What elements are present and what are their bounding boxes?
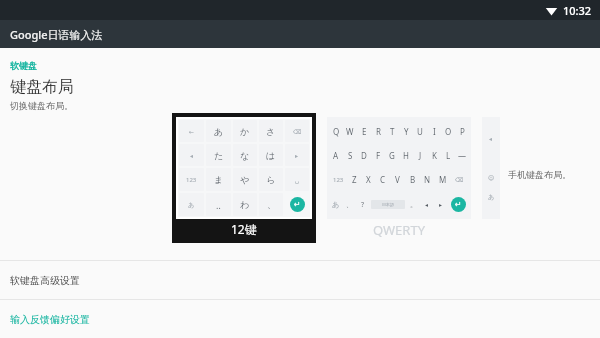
staticText: た <box>214 150 224 161</box>
staticText: さ <box>266 126 276 137</box>
staticText: は <box>266 150 276 161</box>
staticText: な <box>240 150 250 161</box>
staticText: Y <box>404 126 409 137</box>
staticText: G <box>389 150 395 161</box>
staticText: 日本語 <box>382 202 394 207</box>
staticText: 、 <box>267 199 276 210</box>
staticText: 手机键盘布局。 <box>508 169 571 180</box>
staticText: D <box>361 150 367 161</box>
staticText: ⌫ <box>293 128 302 135</box>
staticText: T <box>390 126 395 137</box>
staticText: ◂ <box>190 152 194 159</box>
staticText: あ <box>214 126 224 137</box>
staticText: 。 <box>410 200 417 209</box>
button[interactable]: ◂ <box>482 117 500 219</box>
staticText: ← <box>189 128 195 135</box>
button[interactable]: ← <box>172 113 316 243</box>
staticText: 、 <box>346 200 353 209</box>
staticText: P <box>460 126 465 137</box>
staticText: 输入反馈偏好设置 <box>10 313 90 326</box>
staticText: ま <box>214 174 224 185</box>
staticText: R <box>376 126 381 137</box>
staticText: や <box>240 174 250 185</box>
button[interactable]: 输入反馈偏好设置 <box>0 300 600 338</box>
staticText: ▸ <box>439 201 443 208</box>
staticText: U <box>417 126 423 137</box>
staticText: ↵ <box>455 200 462 209</box>
staticText: 123 <box>186 176 197 184</box>
staticText: ◂ <box>425 201 429 208</box>
staticText: ▸ <box>295 152 299 159</box>
staticText: E <box>362 126 367 137</box>
staticText: H <box>403 150 409 161</box>
staticText: ? <box>361 200 365 210</box>
staticText: あ <box>188 201 195 209</box>
staticText: 12键 <box>231 221 257 237</box>
staticText: か <box>240 126 250 137</box>
staticText: わ <box>240 199 250 210</box>
staticText: J <box>419 150 422 161</box>
staticText: ⌫ <box>455 176 464 183</box>
staticText: O <box>445 126 452 137</box>
button[interactable]: 软键盘高级设置 <box>0 261 600 299</box>
staticText: A <box>333 150 339 161</box>
staticText: 10:32 <box>563 3 592 18</box>
staticText: 键盘布局 <box>10 77 74 97</box>
staticText: ら <box>266 174 276 185</box>
staticText: N <box>424 174 431 185</box>
staticText: Z <box>352 174 357 185</box>
staticText: — <box>458 150 466 161</box>
staticText: ‥ <box>216 199 221 211</box>
staticText: ☺ <box>488 174 495 181</box>
staticText: B <box>410 174 416 185</box>
staticText: I <box>433 126 436 137</box>
staticText: C <box>380 174 386 185</box>
staticText: ␣ <box>295 176 299 183</box>
staticText: W <box>346 126 354 137</box>
staticText: 软键盘高级设置 <box>10 274 80 287</box>
staticText: L <box>446 150 451 161</box>
staticText: F <box>376 150 381 161</box>
staticText: ◂ <box>489 135 493 142</box>
staticText: X <box>366 174 371 185</box>
button[interactable]: Q <box>327 117 471 241</box>
staticText: 123 <box>333 176 344 184</box>
staticText: 软键盘 <box>10 60 37 71</box>
staticText: ↵ <box>294 200 301 209</box>
staticText: あ <box>488 193 495 201</box>
staticText: Q <box>333 126 340 137</box>
staticText: 切换键盘布局。 <box>10 100 73 111</box>
staticText: S <box>348 150 353 161</box>
staticText: Google日语输入法 <box>10 27 103 42</box>
staticText: QWERTY <box>373 221 426 239</box>
staticText: V <box>395 174 400 185</box>
staticText: M <box>439 174 447 185</box>
staticText: あ <box>332 200 340 209</box>
staticText: K <box>432 150 437 161</box>
